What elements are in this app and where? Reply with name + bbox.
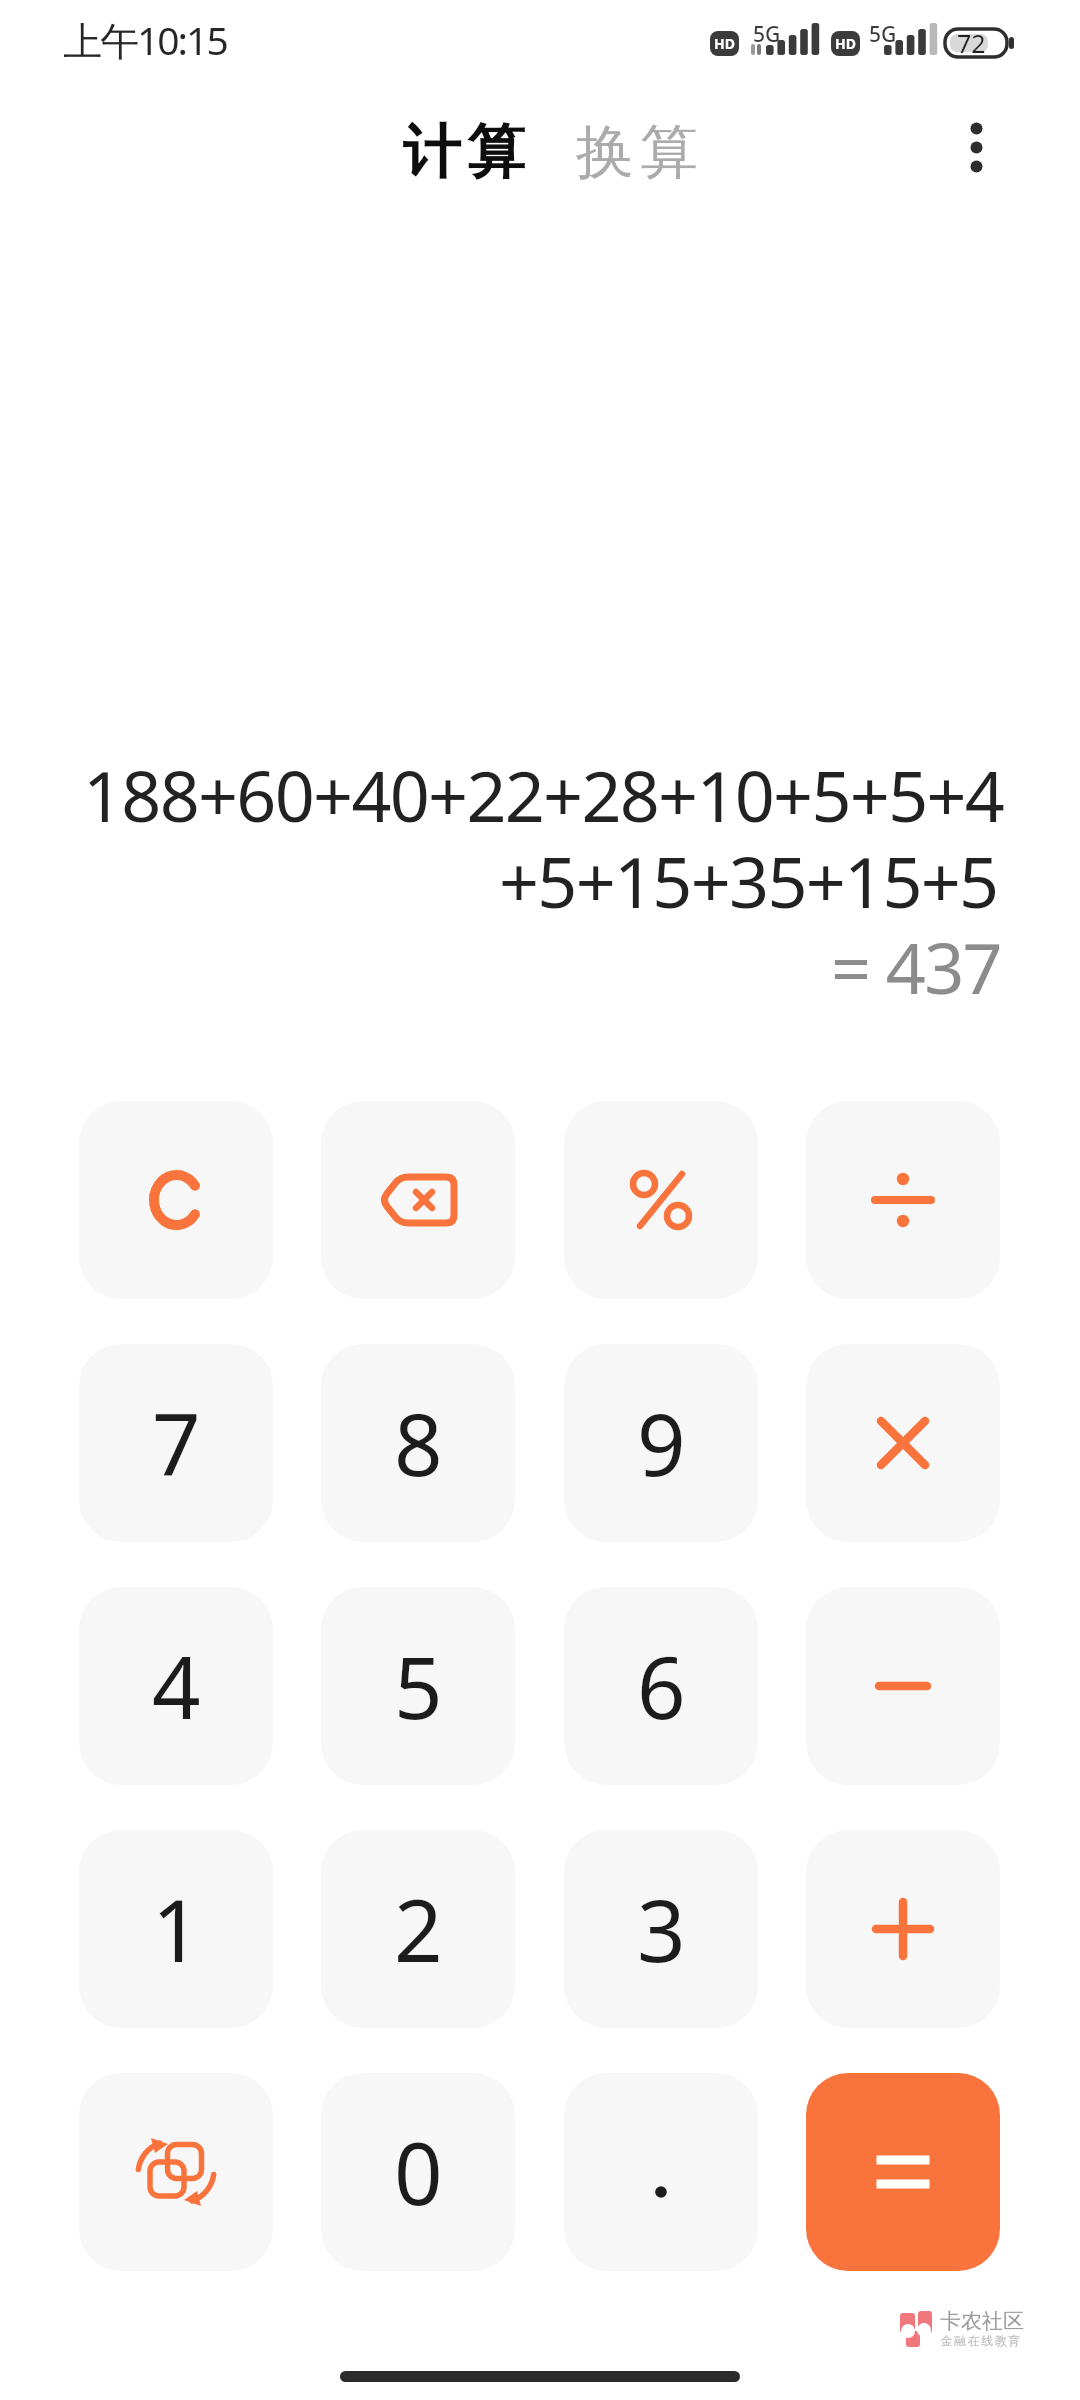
button[interactable] bbox=[564, 1101, 758, 1299]
staticText: 金融在线教育 bbox=[940, 2333, 1021, 2348]
button[interactable] bbox=[806, 1830, 1000, 2028]
staticText: 上午10:15 bbox=[63, 13, 227, 66]
button[interactable] bbox=[806, 1344, 1000, 1542]
button[interactable] bbox=[321, 1101, 515, 1299]
staticText: +5+15+35+15+5 bbox=[499, 833, 998, 928]
button[interactable]: 0 bbox=[321, 2073, 515, 2271]
button[interactable] bbox=[806, 1101, 1000, 1299]
staticText: = 437 bbox=[831, 919, 1001, 1014]
staticText: 卡农社区 bbox=[940, 2308, 1024, 2334]
button[interactable]: 6 bbox=[564, 1587, 758, 1785]
button[interactable] bbox=[806, 2073, 1000, 2271]
button[interactable]: 7 bbox=[79, 1344, 273, 1542]
button[interactable]: 4 bbox=[79, 1587, 273, 1785]
button[interactable]: 9 bbox=[564, 1344, 758, 1542]
staticText: 188+60+40+22+28+10+5+5+4 bbox=[83, 747, 1004, 842]
staticText: 72 bbox=[957, 26, 986, 60]
button[interactable] bbox=[79, 2073, 273, 2271]
button[interactable]: 计算 bbox=[400, 116, 528, 189]
staticText: 3 bbox=[637, 1871, 686, 1987]
button[interactable] bbox=[564, 2073, 758, 2271]
staticText: 9 bbox=[637, 1385, 686, 1501]
button[interactable]: 1 bbox=[79, 1830, 273, 2028]
staticText: 6 bbox=[637, 1628, 686, 1744]
button[interactable]: 5 bbox=[321, 1587, 515, 1785]
button[interactable]: 换算 bbox=[573, 116, 701, 189]
staticText: 5G bbox=[753, 20, 781, 49]
staticText: 计算 bbox=[400, 116, 528, 189]
staticText: 8 bbox=[394, 1385, 443, 1501]
staticText: HD bbox=[835, 34, 856, 53]
button[interactable] bbox=[79, 1101, 273, 1299]
button[interactable]: 3 bbox=[564, 1830, 758, 2028]
staticText: 7 bbox=[152, 1385, 201, 1501]
staticText: 1 bbox=[152, 1871, 201, 1987]
staticText: HD bbox=[714, 34, 735, 53]
button[interactable]: 8 bbox=[321, 1344, 515, 1542]
button[interactable]: 2 bbox=[321, 1830, 515, 2028]
staticText: 5G bbox=[869, 20, 897, 49]
button[interactable] bbox=[806, 1587, 1000, 1785]
staticText: 换算 bbox=[573, 116, 701, 189]
staticText: 2 bbox=[394, 1871, 443, 1987]
staticText: 5 bbox=[394, 1628, 443, 1744]
staticText: 0 bbox=[394, 2114, 443, 2230]
staticText: 4 bbox=[152, 1628, 201, 1744]
button[interactable] bbox=[946, 117, 1006, 177]
